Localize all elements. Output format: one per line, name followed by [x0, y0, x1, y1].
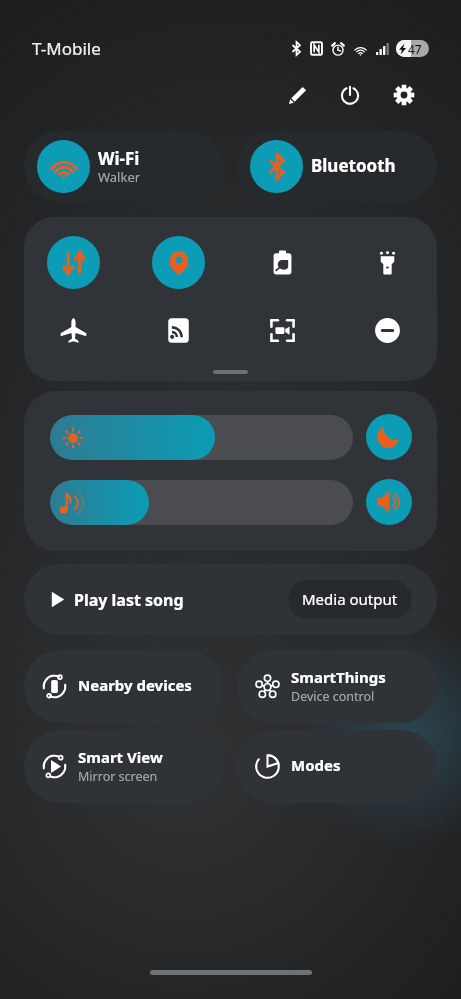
staticText: 47 [408, 41, 422, 57]
staticText: T-Mobile [32, 37, 101, 60]
button[interactable]: Screen recorder [256, 304, 309, 357]
button[interactable]: Mobile data [47, 236, 100, 289]
button[interactable]: Volume mode [366, 479, 412, 525]
button[interactable]: Brightness mode [366, 414, 412, 460]
staticText: Mirror screen [78, 768, 158, 785]
button[interactable]: Edit quick settings [280, 77, 315, 112]
staticText: Modes [291, 755, 341, 775]
button[interactable]: Nearby devices [24, 650, 223, 723]
button[interactable]: Settings [386, 77, 421, 112]
staticText: Nearby devices [78, 675, 192, 695]
button[interactable]: Media output [288, 580, 412, 619]
button[interactable]: Play last song [24, 564, 437, 635]
button[interactable]: Smart View [24, 730, 223, 803]
staticText: Bluetooth [311, 154, 396, 177]
button[interactable]: Airplane mode [47, 304, 100, 357]
staticText: SmartThings [291, 667, 386, 687]
button[interactable]: Brightness [50, 415, 353, 460]
button[interactable]: Volume [50, 480, 353, 525]
button[interactable]: Location [152, 236, 205, 289]
button[interactable]: Wi-Fi [24, 131, 223, 202]
staticText: Wi-Fi [98, 147, 140, 170]
staticText: Media output [302, 589, 398, 609]
button[interactable]: Smart network [152, 304, 205, 357]
button[interactable]: SmartThings [237, 650, 437, 723]
staticText: Walker [98, 168, 141, 186]
button[interactable]: Power off [332, 77, 367, 112]
button[interactable]: Modes [237, 730, 437, 803]
button[interactable]: Bluetooth [237, 131, 437, 202]
staticText: Device control [291, 688, 375, 705]
button[interactable]: Flashlight [361, 236, 414, 289]
staticText: Smart View [78, 747, 163, 767]
button[interactable]: Power saving [256, 236, 309, 289]
staticText: Play last song [74, 589, 184, 611]
button[interactable]: Do not disturb [361, 304, 414, 357]
